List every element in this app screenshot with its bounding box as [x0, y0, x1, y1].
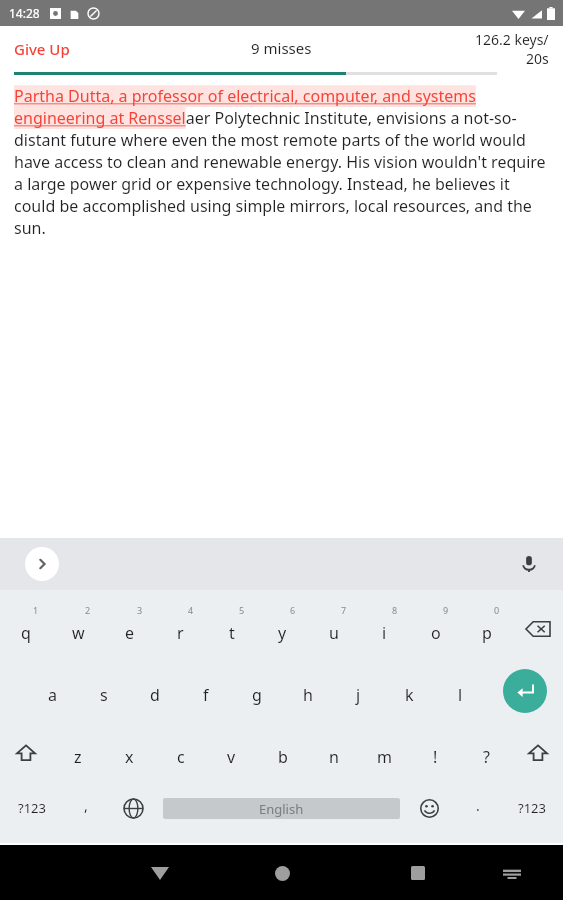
staticText: o [431, 622, 441, 644]
staticText: , [84, 796, 88, 815]
button[interactable]: Expand suggestions [25, 547, 59, 581]
button[interactable]: v [206, 722, 257, 784]
button[interactable]: 5 [206, 598, 257, 660]
staticText: 8 [392, 604, 398, 616]
staticText: 3 [137, 604, 143, 616]
button[interactable]: ! [410, 722, 461, 784]
button[interactable]: ?123 [500, 784, 563, 832]
button[interactable]: Emoji [404, 784, 455, 832]
staticText: c [177, 746, 185, 768]
button[interactable]: Home [262, 853, 302, 893]
button[interactable]: b [257, 722, 308, 784]
staticText: 0 [494, 604, 500, 616]
button[interactable]: f [180, 660, 231, 722]
button[interactable]: Shift [0, 722, 52, 784]
button[interactable]: ?123 [0, 784, 63, 832]
staticText: 126.2 keys/ [475, 30, 549, 49]
staticText: d [150, 684, 160, 706]
button[interactable]: . [455, 784, 500, 832]
staticText: r [177, 622, 184, 644]
staticText: l [458, 684, 463, 706]
staticText: b [278, 746, 288, 768]
staticText: k [405, 684, 414, 706]
button[interactable]: Switch keyboard [495, 856, 529, 890]
staticText: 1 [33, 604, 39, 616]
button[interactable]: English [163, 798, 400, 819]
button[interactable]: Backspace [512, 598, 563, 660]
button[interactable]: z [52, 722, 104, 784]
button[interactable]: d [129, 660, 180, 722]
staticText: p [482, 622, 492, 644]
staticText: q [21, 622, 31, 644]
button[interactable]: Recent apps [398, 853, 438, 893]
button[interactable]: m [359, 722, 410, 784]
button[interactable]: 3 [104, 598, 155, 660]
staticText: z [74, 746, 82, 768]
button[interactable]: Back [140, 853, 180, 893]
button[interactable]: Give Up [14, 39, 70, 59]
button[interactable]: , [63, 784, 108, 832]
button[interactable]: Voice input [513, 548, 545, 580]
staticText: j [356, 684, 361, 706]
staticText: Give Up [14, 39, 70, 59]
button[interactable]: 8 [359, 598, 410, 660]
staticText: ! [433, 746, 438, 768]
staticText: m [377, 746, 392, 768]
button[interactable]: c [155, 722, 206, 784]
staticText: English [259, 800, 304, 818]
button[interactable]: ? [461, 722, 512, 784]
staticText: x [125, 746, 134, 768]
button[interactable]: k [384, 660, 435, 722]
button[interactable]: a [27, 660, 78, 722]
staticText: 9 [443, 604, 449, 616]
staticText: Partha Dutta, a professor of electrical,… [14, 85, 549, 239]
staticText: 14:28 [9, 5, 40, 21]
button[interactable]: x [104, 722, 155, 784]
button[interactable]: 4 [155, 598, 206, 660]
button[interactable]: Change language [108, 784, 159, 832]
staticText: h [303, 684, 313, 706]
button[interactable]: Enter [486, 660, 563, 722]
staticText: 4 [188, 604, 194, 616]
button[interactable]: Shift [512, 722, 563, 784]
button[interactable]: 6 [257, 598, 308, 660]
staticText: 6 [290, 604, 296, 616]
staticText: ? [483, 746, 490, 768]
button[interactable]: l [435, 660, 486, 722]
staticText: s [100, 684, 108, 706]
button[interactable]: n [308, 722, 359, 784]
staticText: 2 [85, 604, 91, 616]
staticText: n [329, 746, 339, 768]
staticText: 9 misses [251, 38, 312, 58]
staticText: f [203, 684, 209, 706]
button[interactable]: 9 [410, 598, 461, 660]
staticText: v [227, 746, 236, 768]
button[interactable]: 0 [461, 598, 512, 660]
staticText: 7 [341, 604, 347, 616]
button[interactable]: g [231, 660, 282, 722]
staticText: 20s [526, 49, 549, 68]
button[interactable]: 7 [308, 598, 359, 660]
staticText: 5 [239, 604, 245, 616]
button[interactable]: h [282, 660, 333, 722]
button[interactable]: j [333, 660, 384, 722]
staticText: ?123 [518, 799, 546, 817]
staticText: y [278, 622, 287, 644]
staticText: e [125, 622, 135, 644]
staticText: w [72, 622, 85, 644]
staticText: a [48, 684, 57, 706]
staticText: ?123 [18, 799, 46, 817]
staticText: t [229, 622, 235, 644]
staticText: u [329, 622, 339, 644]
staticText: i [382, 622, 387, 644]
staticText: . [476, 796, 480, 815]
button[interactable]: 2 [52, 598, 104, 660]
button[interactable]: s [78, 660, 129, 722]
staticText: g [252, 684, 262, 706]
button[interactable]: 1 [0, 598, 52, 660]
